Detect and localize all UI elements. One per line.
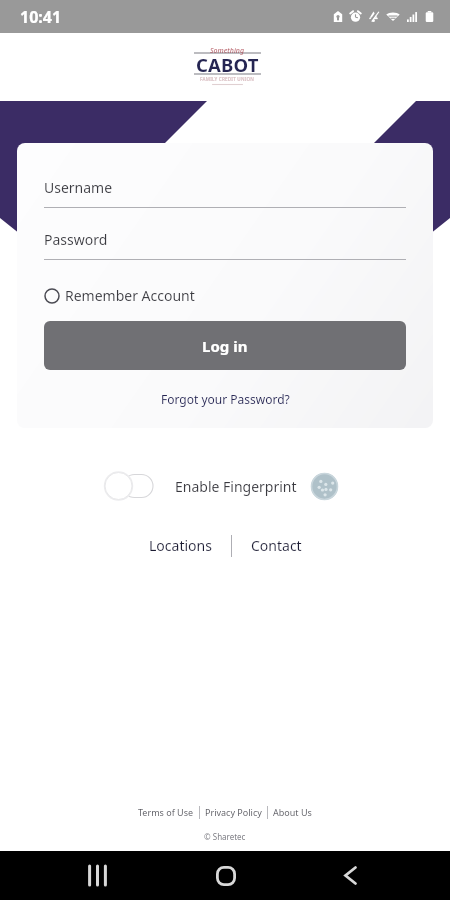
button[interactable]: Forgot your Password? bbox=[157, 387, 294, 411]
staticText: Log in bbox=[202, 336, 248, 356]
button[interactable]: Terms of Use bbox=[133, 804, 199, 820]
staticText: © Sharetec bbox=[204, 831, 246, 842]
button[interactable]: About Us bbox=[268, 804, 317, 820]
staticText: Remember Account bbox=[65, 286, 195, 305]
staticText: FAMILY CREDIT UNION bbox=[200, 76, 255, 82]
button[interactable]: Username bbox=[44, 178, 406, 208]
button[interactable]: Contact bbox=[243, 531, 310, 560]
staticText: Something bbox=[210, 46, 245, 56]
button[interactable]: Password bbox=[44, 230, 406, 260]
button[interactable]: Back bbox=[326, 851, 375, 900]
staticText: CABOT bbox=[196, 52, 259, 77]
staticText: Password bbox=[44, 230, 108, 249]
button[interactable]: Privacy Policy bbox=[200, 804, 267, 820]
button[interactable]: Fingerprint bbox=[311, 473, 338, 500]
button[interactable]: Enable Fingerprint toggle bbox=[103, 471, 155, 501]
staticText: 10:41 bbox=[20, 6, 62, 28]
staticText: Username bbox=[44, 178, 113, 197]
button[interactable]: Home bbox=[201, 851, 250, 900]
button[interactable]: Remember Account bbox=[44, 284, 195, 307]
button[interactable]: Log in bbox=[44, 321, 406, 370]
button[interactable]: Recents bbox=[73, 851, 122, 900]
staticText: Enable Fingerprint bbox=[175, 477, 297, 496]
button[interactable]: Locations bbox=[141, 531, 220, 560]
